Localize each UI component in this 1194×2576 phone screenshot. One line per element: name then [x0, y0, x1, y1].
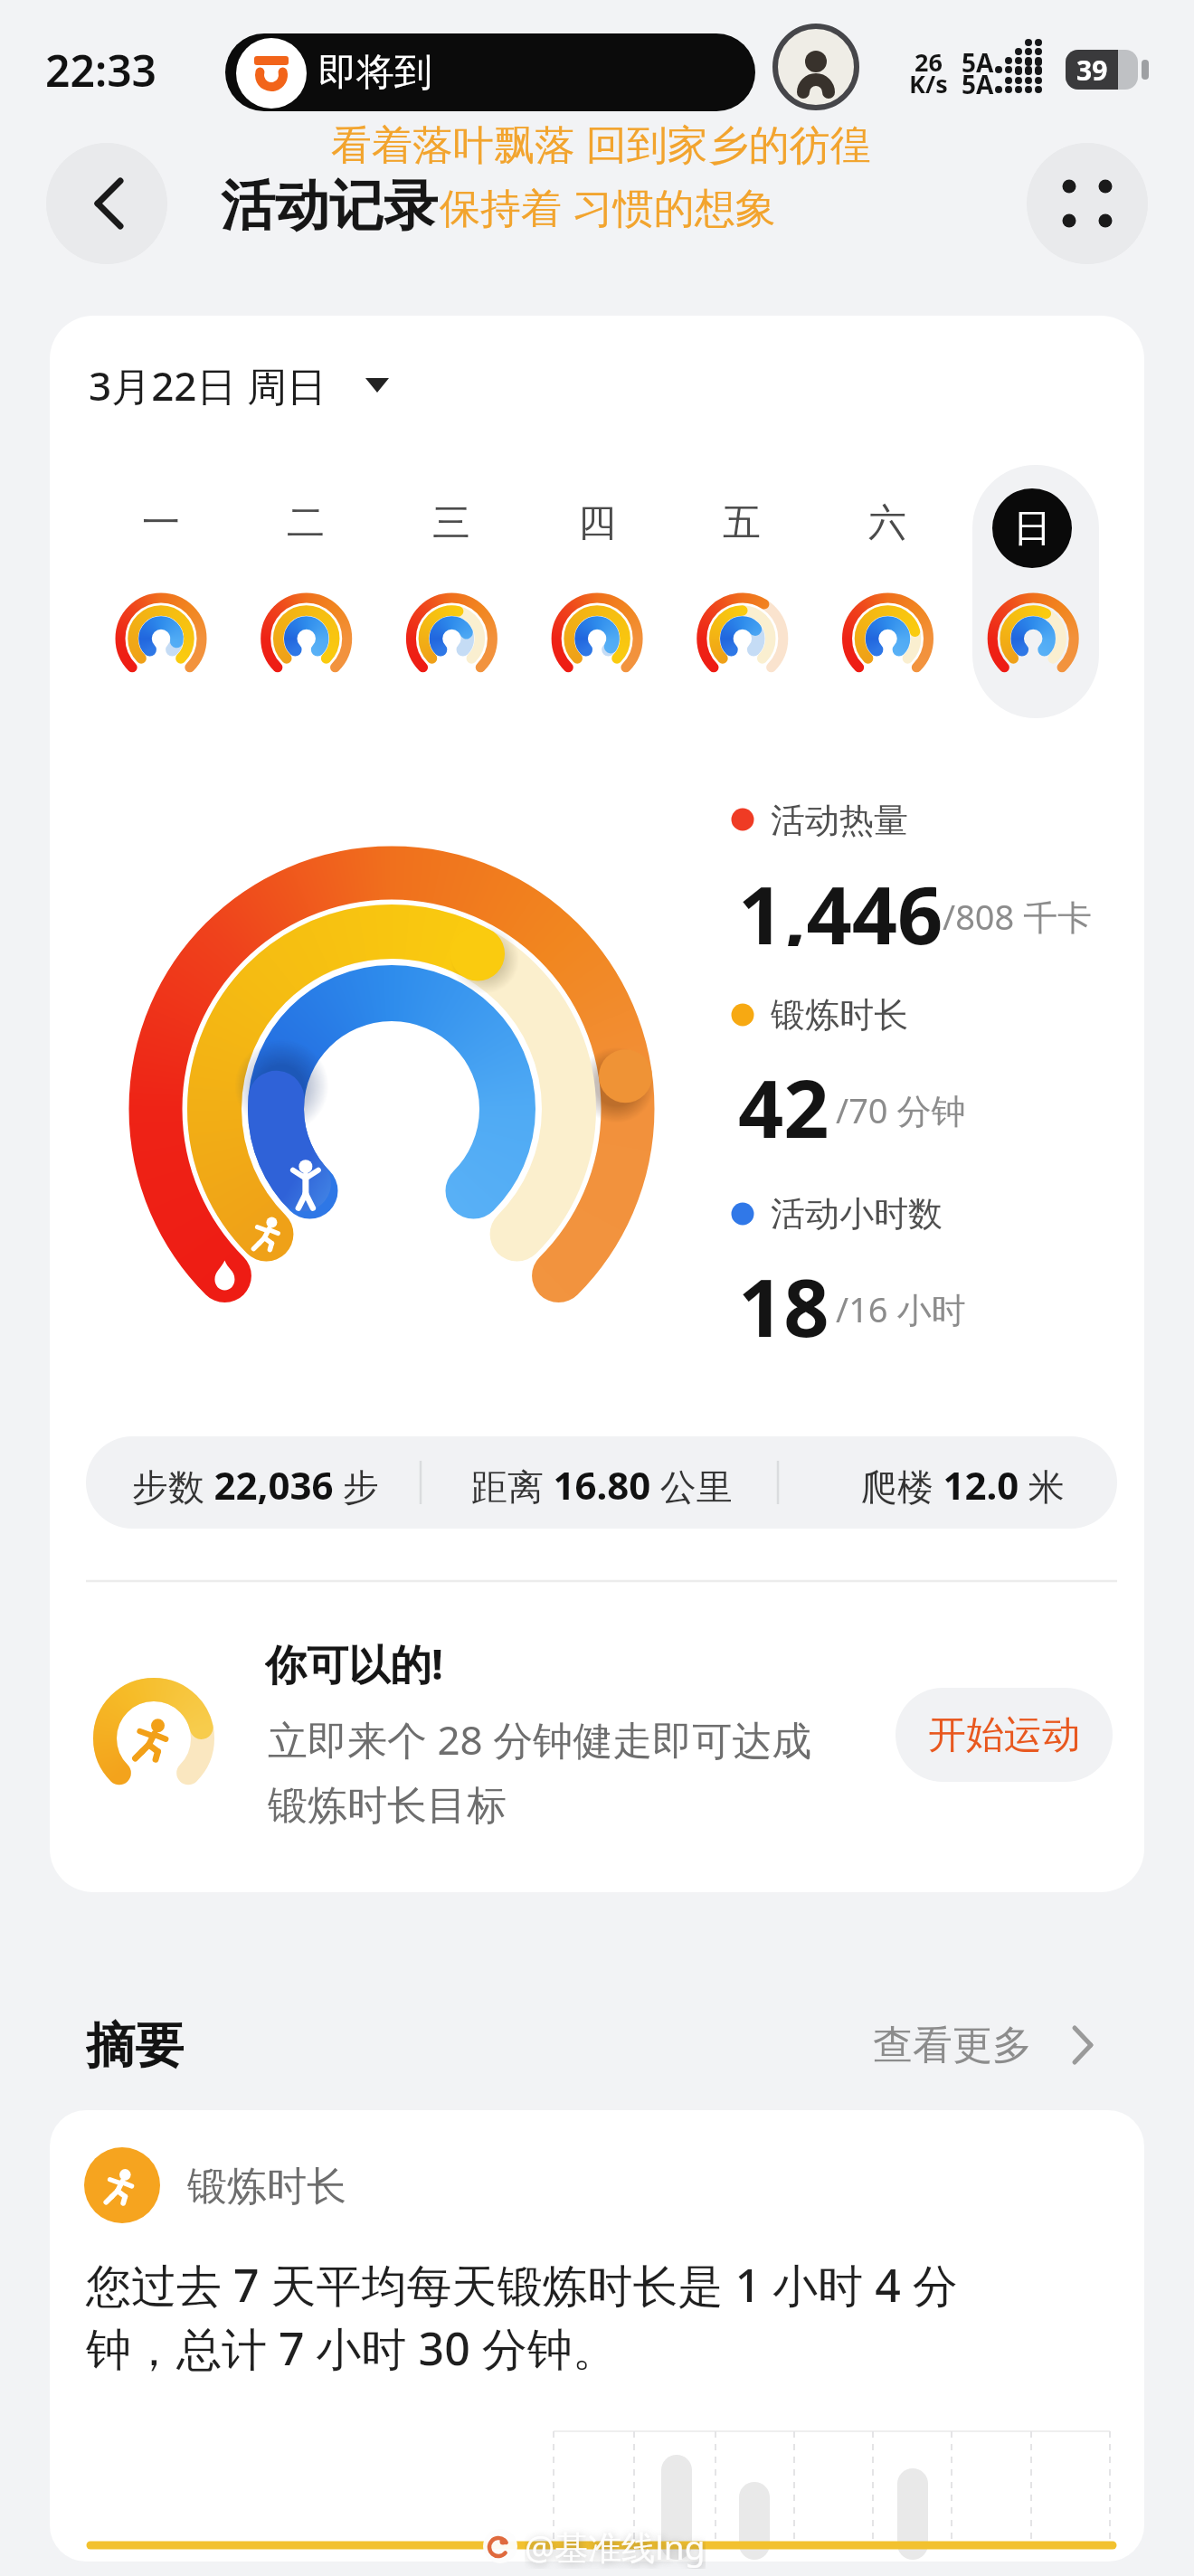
- button[interactable]: [50, 2110, 1144, 2562]
- button[interactable]: [242, 457, 369, 719]
- staticText: 锻炼时长: [187, 2162, 346, 2211]
- staticText: 爬楼 12.0 米: [861, 1459, 1065, 1506]
- staticText: 日: [1013, 505, 1051, 553]
- staticText: 四: [578, 499, 616, 547]
- staticText: 39: [1076, 52, 1108, 89]
- button[interactable]: [98, 457, 224, 719]
- staticText: 六: [868, 499, 906, 547]
- staticText: 一: [142, 499, 180, 547]
- button[interactable]: [534, 457, 660, 719]
- staticText: /70 分钟: [836, 1086, 966, 1133]
- button[interactable]: [388, 457, 515, 719]
- staticText: K/s: [909, 67, 948, 98]
- button[interactable]: [824, 457, 951, 719]
- staticText: 查看更多: [873, 2021, 1032, 2069]
- button[interactable]: [895, 1688, 1113, 1782]
- staticText: 3月22日 周日: [89, 358, 327, 407]
- staticText: 锻炼时长: [771, 993, 908, 1037]
- staticText: 18: [738, 1252, 829, 1339]
- staticText: 22:33: [45, 41, 157, 95]
- staticText: 42: [738, 1053, 829, 1140]
- staticText: 摘要: [86, 2015, 184, 2075]
- staticText: 5A: [962, 45, 994, 76]
- staticText: 保持着 习惯的想象: [440, 179, 776, 230]
- staticText: 活动记录: [221, 172, 438, 235]
- staticText: 你可以的!: [265, 1635, 443, 1686]
- staticText: 5A: [962, 67, 994, 98]
- staticText: @基准线lng: [525, 2524, 706, 2569]
- staticText: 立即来个 28 分钟健走即可达成: [268, 1712, 812, 1763]
- staticText: 活动小时数: [771, 1192, 943, 1236]
- staticText: 锻炼时长目标: [268, 1781, 507, 1831]
- staticText: 看着落叶飘落 回到家乡的彷徨: [331, 116, 871, 166]
- staticText: 步数 22,036 步: [132, 1459, 379, 1506]
- button[interactable]: [868, 2012, 1104, 2080]
- button[interactable]: [1027, 143, 1148, 264]
- button[interactable]: [678, 457, 805, 719]
- staticText: 26: [914, 45, 943, 76]
- button[interactable]: [970, 457, 1096, 719]
- staticText: 三: [432, 499, 470, 547]
- staticText: 二: [287, 499, 325, 547]
- staticText: /16 小时: [836, 1285, 966, 1332]
- staticText: 五: [723, 499, 761, 547]
- staticText: 距离 16.80 公里: [471, 1459, 733, 1506]
- staticText: 您过去 7 天平均每天锻炼时长是 1 小时 4 分 钟，总计 7 小时 30 分…: [86, 2254, 958, 2378]
- staticText: /808 千卡: [943, 893, 1093, 940]
- staticText: 1,446: [738, 859, 943, 946]
- staticText: 活动热量: [771, 799, 908, 842]
- staticText: 开始运动: [928, 1711, 1080, 1759]
- staticText: 即将到: [318, 49, 432, 97]
- button[interactable]: [86, 353, 393, 409]
- button[interactable]: [46, 143, 167, 264]
